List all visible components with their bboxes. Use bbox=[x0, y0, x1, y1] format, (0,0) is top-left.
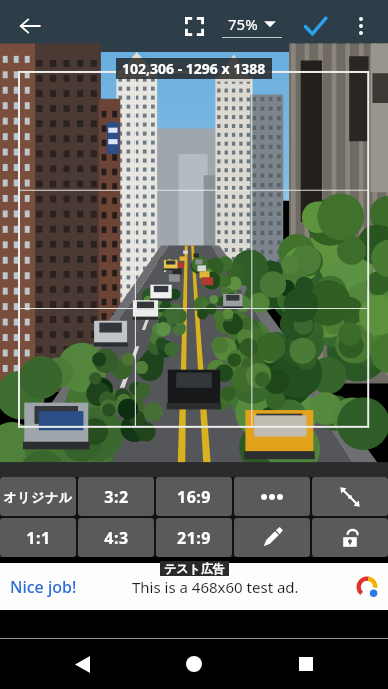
button[interactable]: Custom ratio bbox=[234, 518, 310, 557]
button[interactable]: 16:9 bbox=[156, 477, 232, 516]
button[interactable]: Fit to screen bbox=[173, 5, 215, 47]
button[interactable]: Resize bbox=[312, 477, 388, 516]
staticText: オリジナル bbox=[3, 489, 73, 505]
button[interactable]: Back bbox=[62, 644, 102, 684]
staticText: 102,306 - 1296 x 1388 bbox=[122, 59, 266, 78]
staticText: 1:1 bbox=[26, 527, 51, 549]
staticText: 4:3 bbox=[104, 527, 129, 549]
button[interactable]: オリジナル bbox=[0, 477, 76, 516]
button[interactable]: Recent apps bbox=[286, 644, 326, 684]
staticText: テスト広告 bbox=[164, 561, 225, 576]
staticText: Nice job! bbox=[10, 576, 77, 598]
button[interactable]: 21:9 bbox=[156, 518, 232, 557]
button[interactable]: 75% bbox=[222, 14, 282, 38]
staticText: This is a 468x60 test ad. bbox=[132, 577, 299, 597]
button[interactable]: Back bbox=[8, 4, 52, 48]
staticText: 3:2 bbox=[104, 486, 129, 508]
button[interactable]: Home bbox=[174, 644, 214, 684]
button[interactable]: More options bbox=[340, 5, 382, 47]
button[interactable]: 3:2 bbox=[78, 477, 154, 516]
button[interactable]: 4:3 bbox=[78, 518, 154, 557]
staticText: 21:9 bbox=[177, 527, 211, 549]
button[interactable]: 1:1 bbox=[0, 518, 76, 557]
button[interactable]: Apply bbox=[293, 4, 337, 48]
button[interactable]: More ratios bbox=[234, 477, 310, 516]
button[interactable]: Lock aspect ratio bbox=[312, 518, 388, 557]
staticText: 16:9 bbox=[177, 486, 211, 508]
button[interactable]: Nice job! bbox=[0, 563, 388, 610]
staticText: 75% bbox=[228, 14, 258, 34]
